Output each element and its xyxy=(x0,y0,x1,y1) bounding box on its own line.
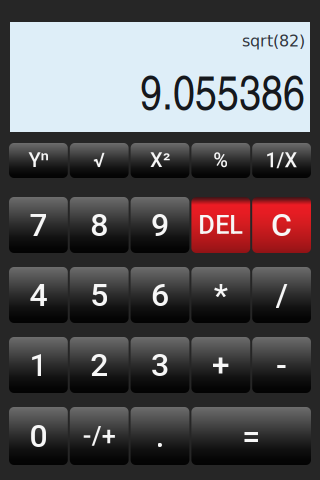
button[interactable]: 3 xyxy=(131,337,189,393)
staticText: 1 xyxy=(29,346,47,384)
staticText: -/+ xyxy=(83,421,116,451)
button[interactable]: 9 xyxy=(131,197,189,253)
staticText: 3 xyxy=(151,346,169,384)
button[interactable]: - xyxy=(252,337,311,393)
button[interactable]: % xyxy=(191,143,250,178)
button[interactable]: 0 xyxy=(9,407,68,465)
button[interactable]: 1 xyxy=(9,337,68,393)
button[interactable]: . xyxy=(131,407,189,465)
button[interactable]: 8 xyxy=(70,197,129,253)
button[interactable]: / xyxy=(252,267,311,323)
staticText: 8 xyxy=(90,206,108,244)
button[interactable]: X² xyxy=(131,143,189,178)
staticText: X² xyxy=(150,149,170,172)
button[interactable]: 2 xyxy=(70,337,129,393)
button[interactable]: 5 xyxy=(70,267,129,323)
staticText: 7 xyxy=(29,206,47,244)
button[interactable]: 7 xyxy=(9,197,68,253)
button[interactable]: Yⁿ xyxy=(9,143,68,178)
staticText: sqrt(82) xyxy=(242,32,305,50)
button[interactable]: + xyxy=(191,337,250,393)
staticText: 0 xyxy=(29,417,47,455)
staticText: 5 xyxy=(90,276,108,314)
button[interactable]: 1/X xyxy=(252,143,311,178)
staticText: 1/X xyxy=(266,149,298,172)
button[interactable]: C xyxy=(252,197,311,253)
staticText: 2 xyxy=(90,346,108,384)
staticText: C xyxy=(271,206,292,244)
button[interactable]: DEL xyxy=(191,197,250,253)
staticText: * xyxy=(214,276,228,314)
staticText: 9 xyxy=(151,206,169,244)
staticText: . xyxy=(155,417,164,455)
button[interactable]: = xyxy=(191,407,311,465)
staticText: Yⁿ xyxy=(28,149,48,172)
button[interactable]: √ xyxy=(70,143,129,178)
staticText: DEL xyxy=(198,210,243,240)
staticText: 6 xyxy=(151,276,169,314)
button[interactable]: 6 xyxy=(131,267,189,323)
staticText: 4 xyxy=(29,276,47,314)
staticText: / xyxy=(276,276,288,314)
staticText: 9.055386 xyxy=(140,57,305,123)
staticText: - xyxy=(276,346,287,384)
staticText: √ xyxy=(93,149,105,172)
button[interactable]: 4 xyxy=(9,267,68,323)
button[interactable]: * xyxy=(191,267,250,323)
staticText: % xyxy=(213,149,228,172)
staticText: = xyxy=(242,417,260,455)
staticText: + xyxy=(212,346,230,384)
button[interactable]: -/+ xyxy=(70,407,129,465)
